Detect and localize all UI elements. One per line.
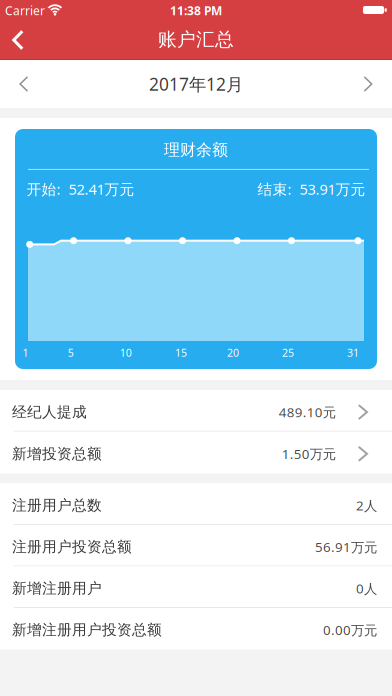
staticText: 2017年12月	[149, 72, 243, 95]
staticText: 注册用户投资总额	[12, 538, 132, 556]
button[interactable]: Back	[2, 20, 34, 60]
staticText: 1.50万元	[282, 445, 336, 463]
staticText: 489.10元	[279, 403, 336, 421]
staticText: 56.91万元	[315, 538, 377, 556]
staticText: 1	[22, 345, 28, 360]
staticText: 11:38 PM	[170, 2, 222, 18]
staticText: 20	[227, 345, 239, 360]
staticText: 经纪人提成	[12, 403, 87, 421]
staticText: 0.00万元	[323, 621, 377, 639]
staticText: 开始: 52.41万元	[26, 179, 134, 199]
button[interactable]: Next month	[353, 67, 383, 101]
staticText: 注册用户总数	[12, 496, 102, 514]
button[interactable]: 经纪人提成	[0, 390, 392, 432]
button[interactable]: Previous month	[9, 67, 39, 101]
staticText: 新增投资总额	[12, 445, 102, 463]
staticText: 10	[120, 345, 132, 360]
staticText: 15	[175, 345, 187, 360]
staticText: 5	[68, 345, 74, 360]
staticText: 理财余额	[164, 140, 228, 160]
staticText: Carrier	[5, 2, 45, 18]
staticText: 2人	[356, 497, 377, 514]
staticText: 新增注册用户投资总额	[12, 621, 162, 639]
staticText: 结束: 53.91万元	[257, 179, 365, 199]
staticText: 25	[282, 345, 294, 360]
staticText: 账户汇总	[158, 28, 234, 51]
staticText: 0人	[356, 580, 377, 597]
staticText: 新增注册用户	[12, 579, 102, 597]
staticText: 31	[347, 345, 359, 360]
button[interactable]: 新增投资总额	[0, 432, 392, 474]
